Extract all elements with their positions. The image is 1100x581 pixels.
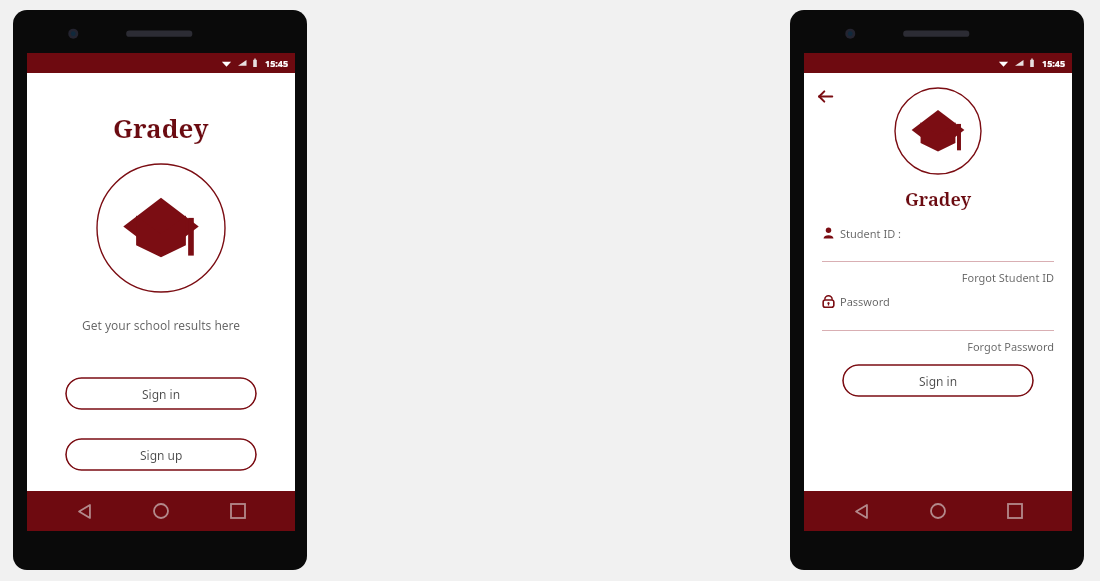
button[interactable]: Home — [918, 491, 958, 531]
staticText: Sign in — [919, 373, 958, 389]
button[interactable]: Student — [822, 226, 1054, 241]
button[interactable]: Forgot Password — [822, 339, 1054, 354]
other: Password — [822, 295, 835, 308]
staticText: Gradey — [905, 187, 972, 212]
button[interactable]: Password — [822, 294, 1054, 309]
button[interactable]: Back — [64, 491, 104, 531]
staticText: Get your school results here — [82, 317, 241, 333]
button[interactable]: Recents — [995, 491, 1035, 531]
button[interactable]: Sign up — [65, 438, 257, 471]
staticText: 15:45 — [1042, 57, 1066, 69]
button[interactable]: Back — [810, 81, 840, 111]
staticText: Student ID : — [840, 226, 901, 241]
staticText: Sign up — [140, 447, 183, 463]
staticText: Password — [840, 294, 890, 309]
button[interactable]: Sign in — [842, 364, 1034, 397]
button[interactable]: Forgot Student ID — [822, 270, 1054, 285]
other: Student — [822, 227, 835, 240]
button[interactable]: Back — [841, 491, 881, 531]
button[interactable]: Sign in — [65, 377, 257, 410]
button[interactable]: Home — [141, 491, 181, 531]
staticText: 15:45 — [265, 57, 289, 69]
staticText: Sign in — [142, 386, 181, 402]
button[interactable]: Recents — [218, 491, 258, 531]
staticText: Gradey — [113, 110, 209, 145]
